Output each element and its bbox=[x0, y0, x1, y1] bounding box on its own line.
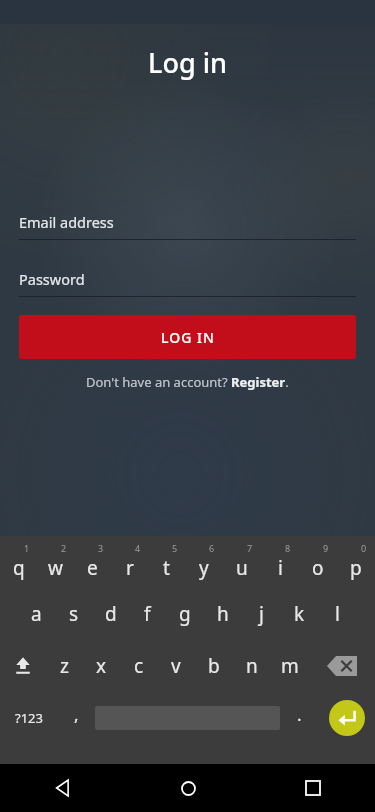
staticText: 1 bbox=[24, 542, 30, 554]
button[interactable]: Password bbox=[19, 269, 356, 297]
staticText: e bbox=[87, 555, 98, 581]
button[interactable]: o bbox=[299, 536, 337, 588]
staticText: 8 bbox=[285, 542, 291, 554]
staticText: d bbox=[105, 601, 117, 627]
staticText: 3 bbox=[98, 542, 104, 554]
staticText: j bbox=[259, 601, 264, 627]
staticText: 0 bbox=[361, 542, 367, 554]
staticText: t bbox=[163, 555, 170, 581]
button[interactable]: f bbox=[129, 588, 166, 640]
staticText: c bbox=[134, 653, 144, 679]
button[interactable]: m bbox=[271, 640, 309, 692]
staticText: h bbox=[217, 601, 229, 627]
button[interactable]: s bbox=[55, 588, 92, 640]
staticText: z bbox=[60, 653, 69, 679]
staticText: p bbox=[350, 555, 362, 581]
staticText: x bbox=[96, 653, 107, 679]
staticText: q bbox=[13, 555, 25, 581]
staticText: 5 bbox=[172, 542, 178, 554]
button[interactable]: Don't have an account? Register. bbox=[19, 371, 356, 393]
staticText: 6 bbox=[209, 542, 215, 554]
staticText: ?123 bbox=[15, 709, 43, 727]
button[interactable]: n bbox=[233, 640, 271, 692]
button[interactable]: b bbox=[195, 640, 233, 692]
button[interactable]: Back bbox=[33, 764, 93, 812]
button[interactable]: a bbox=[18, 588, 55, 640]
button[interactable]: p bbox=[337, 536, 375, 588]
button[interactable]: . bbox=[280, 692, 318, 744]
button[interactable]: y bbox=[185, 536, 223, 588]
button[interactable]: Recent apps bbox=[283, 764, 343, 812]
staticText: b bbox=[208, 653, 220, 679]
button[interactable]: l bbox=[318, 588, 356, 640]
staticText: 7 bbox=[247, 542, 253, 554]
staticText: 2 bbox=[61, 542, 67, 554]
staticText: 4 bbox=[135, 542, 141, 554]
button[interactable]: c bbox=[120, 640, 157, 692]
staticText: u bbox=[236, 555, 248, 581]
button[interactable]: Home bbox=[158, 764, 218, 812]
staticText: r bbox=[126, 555, 134, 581]
staticText: l bbox=[335, 601, 340, 627]
staticText: v bbox=[171, 653, 181, 679]
button[interactable]: q bbox=[0, 536, 37, 588]
button[interactable]: u bbox=[223, 536, 261, 588]
staticText: i bbox=[278, 555, 283, 581]
staticText: k bbox=[294, 601, 305, 627]
staticText: g bbox=[179, 601, 191, 627]
staticText: 9 bbox=[323, 542, 329, 554]
button[interactable]: t bbox=[148, 536, 185, 588]
button[interactable]: e bbox=[74, 536, 111, 588]
button[interactable]: i bbox=[261, 536, 299, 588]
button[interactable]: v bbox=[157, 640, 195, 692]
staticText: n bbox=[246, 653, 258, 679]
staticText: Email address bbox=[19, 212, 114, 232]
staticText: y bbox=[199, 555, 209, 581]
staticText: o bbox=[312, 555, 324, 581]
button[interactable]: z bbox=[46, 640, 83, 692]
button[interactable]: w bbox=[37, 536, 74, 588]
button[interactable]: , bbox=[57, 692, 95, 744]
button[interactable]: k bbox=[280, 588, 318, 640]
staticText: a bbox=[31, 601, 42, 627]
button[interactable]: h bbox=[204, 588, 242, 640]
staticText: m bbox=[281, 653, 299, 679]
staticText: Log in bbox=[0, 44, 375, 81]
staticText: . bbox=[297, 703, 302, 726]
button[interactable]: Enter bbox=[318, 692, 375, 744]
staticText: , bbox=[74, 703, 79, 726]
button[interactable]: Backspace bbox=[309, 640, 375, 692]
staticText: LOG IN bbox=[161, 328, 215, 347]
button[interactable]: d bbox=[92, 588, 129, 640]
button[interactable]: ?123 bbox=[0, 692, 57, 744]
staticText: Don't have an account? Register. bbox=[86, 373, 289, 391]
button[interactable]: x bbox=[83, 640, 120, 692]
button[interactable]: Shift bbox=[0, 640, 46, 692]
staticText: Password bbox=[19, 269, 85, 289]
button[interactable]: r bbox=[111, 536, 148, 588]
button[interactable]: g bbox=[166, 588, 204, 640]
staticText: w bbox=[48, 555, 63, 581]
button[interactable]: LOG IN bbox=[19, 315, 356, 359]
button[interactable]: j bbox=[242, 588, 280, 640]
staticText: f bbox=[144, 601, 151, 627]
staticText: s bbox=[69, 601, 79, 627]
button[interactable]: Email address bbox=[19, 212, 356, 240]
